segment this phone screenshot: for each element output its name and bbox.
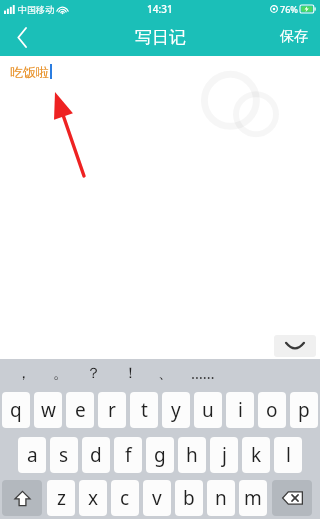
staticText: b xyxy=(183,485,195,511)
staticText: r xyxy=(108,397,116,423)
button[interactable]: x xyxy=(79,480,107,516)
button[interactable]: y xyxy=(162,392,190,428)
button[interactable]: ？ xyxy=(78,359,108,387)
staticText: q xyxy=(10,397,22,423)
staticText: s xyxy=(59,442,69,468)
staticText: w xyxy=(41,397,56,423)
staticText: 、 xyxy=(158,364,173,383)
staticText: o xyxy=(266,397,278,423)
staticText: 。 xyxy=(53,364,68,383)
staticText: k xyxy=(251,442,262,468)
button[interactable]: 。 xyxy=(45,359,75,387)
staticText: 14:31 xyxy=(147,2,173,16)
staticText: …… xyxy=(191,363,215,383)
button[interactable]: r xyxy=(98,392,126,428)
button[interactable]: w xyxy=(34,392,62,428)
staticText: 中国移动 xyxy=(18,4,54,15)
staticText: ， xyxy=(16,364,31,383)
staticText: u xyxy=(202,397,214,423)
staticText: c xyxy=(120,485,130,511)
staticText: x xyxy=(88,485,99,511)
button[interactable]: Backspace xyxy=(272,480,312,516)
button[interactable]: e xyxy=(66,392,94,428)
button[interactable]: g xyxy=(146,437,174,473)
button[interactable]: c xyxy=(111,480,139,516)
staticText: i xyxy=(238,397,243,423)
button[interactable]: o xyxy=(258,392,286,428)
staticText: f xyxy=(125,442,132,468)
button[interactable]: z xyxy=(47,480,75,516)
button[interactable]: Shift xyxy=(2,480,42,516)
staticText: t xyxy=(141,397,148,423)
staticText: p xyxy=(298,397,310,423)
button[interactable]: f xyxy=(114,437,142,473)
staticText: 保存 xyxy=(280,28,308,46)
staticText: y xyxy=(171,397,181,423)
staticText: v xyxy=(152,485,162,511)
staticText: e xyxy=(75,397,86,423)
button[interactable]: q xyxy=(2,392,30,428)
button[interactable]: v xyxy=(143,480,171,516)
button[interactable]: u xyxy=(194,392,222,428)
staticText: d xyxy=(90,442,102,468)
button[interactable]: s xyxy=(50,437,78,473)
staticText: ？ xyxy=(86,364,101,383)
button[interactable]: l xyxy=(274,437,302,473)
button[interactable]: ， xyxy=(8,359,38,387)
button[interactable]: k xyxy=(242,437,270,473)
button[interactable]: d xyxy=(82,437,110,473)
staticText: 吃饭啦 xyxy=(10,64,49,80)
staticText: ！ xyxy=(123,364,138,383)
button[interactable]: h xyxy=(178,437,206,473)
staticText: 写日记 xyxy=(135,27,186,48)
button[interactable]: p xyxy=(290,392,318,428)
button[interactable]: Hide keyboard xyxy=(274,335,316,357)
button[interactable]: b xyxy=(175,480,203,516)
button[interactable]: Back xyxy=(0,18,44,56)
staticText: z xyxy=(57,485,66,511)
staticText: h xyxy=(186,442,198,468)
staticText: l xyxy=(286,442,291,468)
staticText: g xyxy=(154,442,166,468)
button[interactable]: a xyxy=(18,437,46,473)
staticText: m xyxy=(244,485,262,511)
button[interactable]: …… xyxy=(188,359,218,387)
button[interactable]: 、 xyxy=(150,359,180,387)
button[interactable]: t xyxy=(130,392,158,428)
button[interactable]: 保存 xyxy=(268,18,320,56)
staticText: a xyxy=(27,442,38,468)
button[interactable]: m xyxy=(239,480,267,516)
button[interactable]: i xyxy=(226,392,254,428)
button[interactable]: j xyxy=(210,437,238,473)
staticText: j xyxy=(222,442,227,468)
button[interactable]: n xyxy=(207,480,235,516)
staticText: 76% xyxy=(280,3,298,15)
button[interactable]: ！ xyxy=(115,359,145,387)
staticText: n xyxy=(215,485,227,511)
